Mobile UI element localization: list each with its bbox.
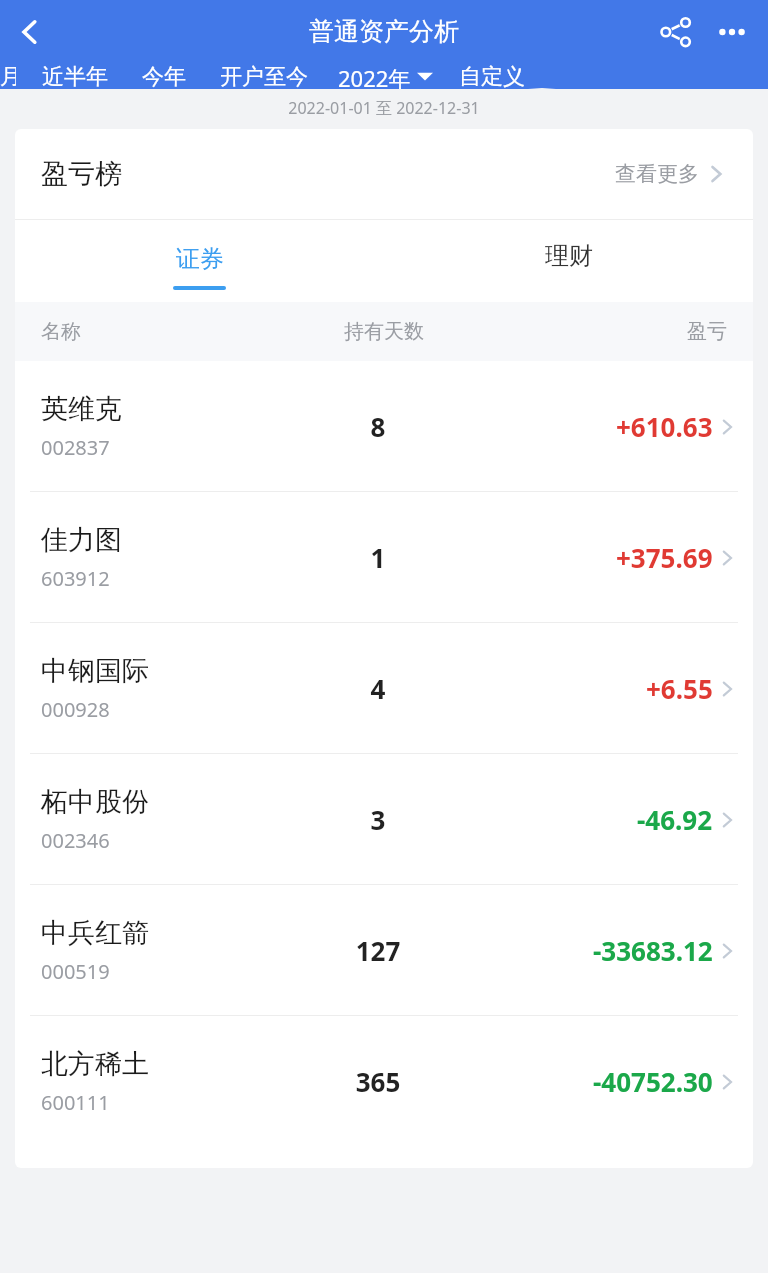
staticText: 8	[262, 409, 494, 444]
staticText: 600111	[41, 1089, 110, 1116]
button[interactable]: 月	[0, 63, 16, 89]
staticText: 柘中股份	[41, 785, 149, 819]
button[interactable]: 自定义	[459, 63, 525, 89]
staticText: 自定义	[459, 63, 525, 89]
staticText: 127	[262, 933, 494, 968]
staticText: 365	[262, 1064, 494, 1099]
staticText: 证券	[176, 244, 224, 274]
staticText: +610.63	[616, 409, 713, 444]
staticText: 000928	[41, 696, 110, 723]
button[interactable]: 柘中股份	[15, 754, 753, 884]
button[interactable]: 英维克	[15, 361, 753, 491]
staticText: -46.92	[637, 802, 713, 837]
staticText: +375.69	[616, 540, 713, 575]
staticText: 1	[262, 540, 494, 575]
staticText: 名称	[41, 319, 259, 344]
button[interactable]: 理财	[384, 220, 753, 302]
button[interactable]: 今年	[142, 63, 186, 89]
button[interactable]: 北方稀土	[15, 1016, 753, 1146]
staticText: 近半年	[42, 63, 108, 89]
button[interactable]: Share	[654, 10, 698, 54]
staticText: 2022-01-01 至 2022-12-31	[0, 97, 768, 119]
button[interactable]: 2022年	[338, 63, 433, 89]
button[interactable]: Back	[6, 8, 54, 56]
staticText: 2022年	[338, 63, 411, 89]
staticText: 000519	[41, 958, 110, 985]
staticText: 理财	[545, 241, 593, 271]
staticText: 中兵红箭	[41, 916, 149, 950]
staticText: -40752.30	[593, 1064, 713, 1099]
staticText: 开户至今	[220, 63, 308, 89]
button[interactable]: 中钢国际	[15, 623, 753, 753]
button[interactable]: 开户至今	[220, 63, 308, 89]
button[interactable]: 佳力图	[15, 492, 753, 622]
staticText: 4	[262, 671, 494, 706]
button[interactable]: 证券	[15, 220, 384, 302]
staticText: 月	[0, 63, 16, 89]
staticText: 普通资产分析	[309, 16, 459, 47]
staticText: 中钢国际	[41, 654, 149, 688]
staticText: 查看更多	[615, 161, 699, 187]
staticText: 盈亏榜	[41, 157, 122, 191]
staticText: 3	[262, 802, 494, 837]
staticText: 603912	[41, 565, 110, 592]
staticText: 英维克	[41, 392, 122, 426]
staticText: +6.55	[646, 671, 713, 706]
button[interactable]: 中兵红箭	[15, 885, 753, 1015]
staticText: 今年	[142, 63, 186, 89]
staticText: 盈亏	[509, 319, 727, 344]
staticText: 002837	[41, 434, 110, 461]
staticText: 北方稀土	[41, 1047, 149, 1081]
staticText: 持有天数	[259, 319, 509, 344]
button[interactable]: More options	[710, 10, 754, 54]
button[interactable]: 盈亏榜	[15, 129, 753, 219]
staticText: 002346	[41, 827, 110, 854]
staticText: 佳力图	[41, 523, 122, 557]
button[interactable]: 近半年	[42, 63, 108, 89]
staticText: -33683.12	[593, 933, 713, 968]
